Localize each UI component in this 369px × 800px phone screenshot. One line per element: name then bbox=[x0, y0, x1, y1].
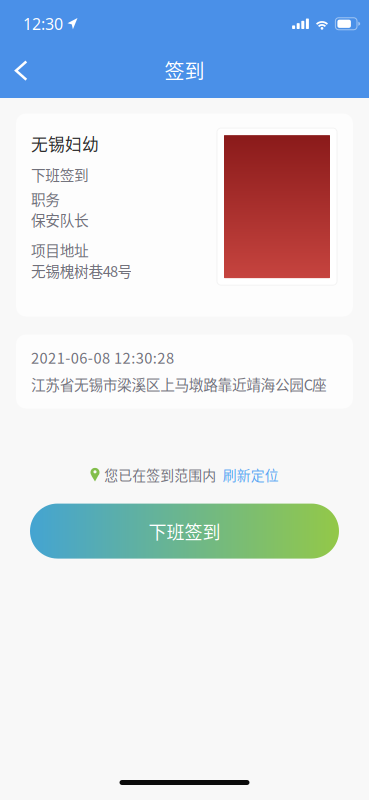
staticText: 您已在签到范围内 bbox=[104, 464, 216, 485]
staticText: 项目地址 bbox=[31, 239, 89, 260]
staticText: 下班签到 bbox=[31, 164, 89, 185]
staticText: 下班签到 bbox=[148, 518, 220, 544]
staticText: 12:30 bbox=[23, 13, 63, 35]
button[interactable]: 刷新定位 bbox=[216, 461, 279, 488]
staticText: 无锡妇幼 bbox=[31, 131, 99, 155]
staticText: 签到 bbox=[164, 56, 204, 85]
staticText: 保安队长 bbox=[31, 209, 89, 230]
button[interactable]: Back bbox=[0, 47, 43, 98]
button[interactable]: 下班签到 bbox=[30, 504, 339, 559]
staticText: 无锡槐树巷48号 bbox=[31, 260, 132, 281]
staticText: 刷新定位 bbox=[223, 464, 279, 485]
staticText: 江苏省无锡市梁溪区上马墩路靠近靖海公园C座 bbox=[31, 373, 327, 395]
staticText: 2021-06-08 12:30:28 bbox=[31, 347, 174, 368]
staticText: 职务 bbox=[31, 188, 60, 209]
